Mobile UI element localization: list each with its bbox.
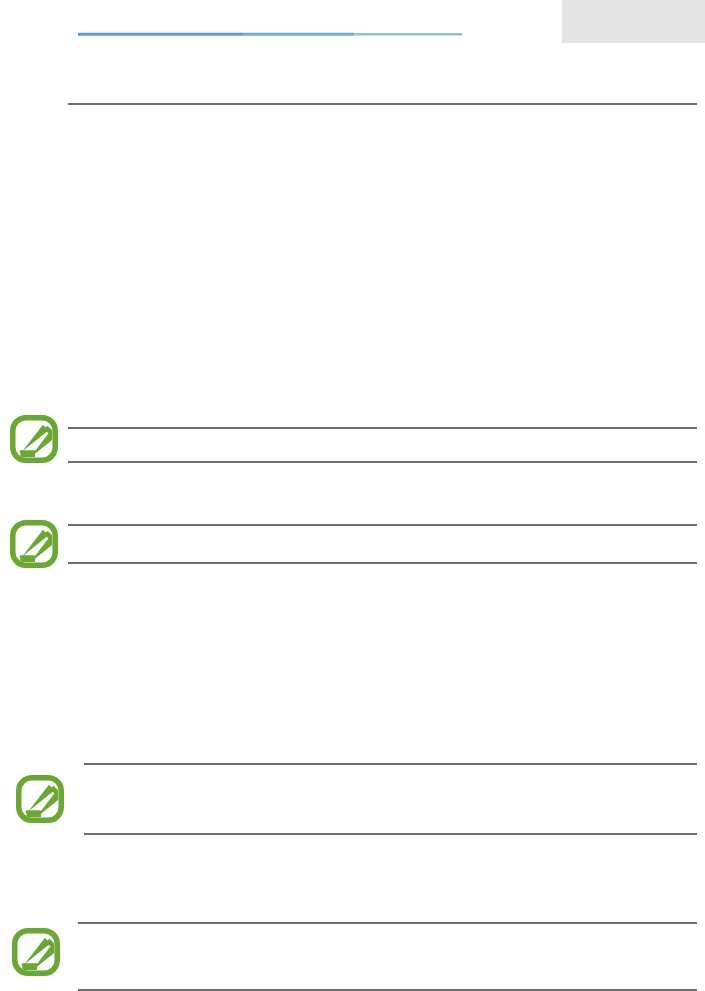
button[interactable]: Note [10,520,58,568]
button[interactable]: Note [10,415,58,463]
button[interactable]: Note [12,928,60,976]
button[interactable]: Link [78,31,462,37]
button[interactable]: Note [16,775,64,823]
